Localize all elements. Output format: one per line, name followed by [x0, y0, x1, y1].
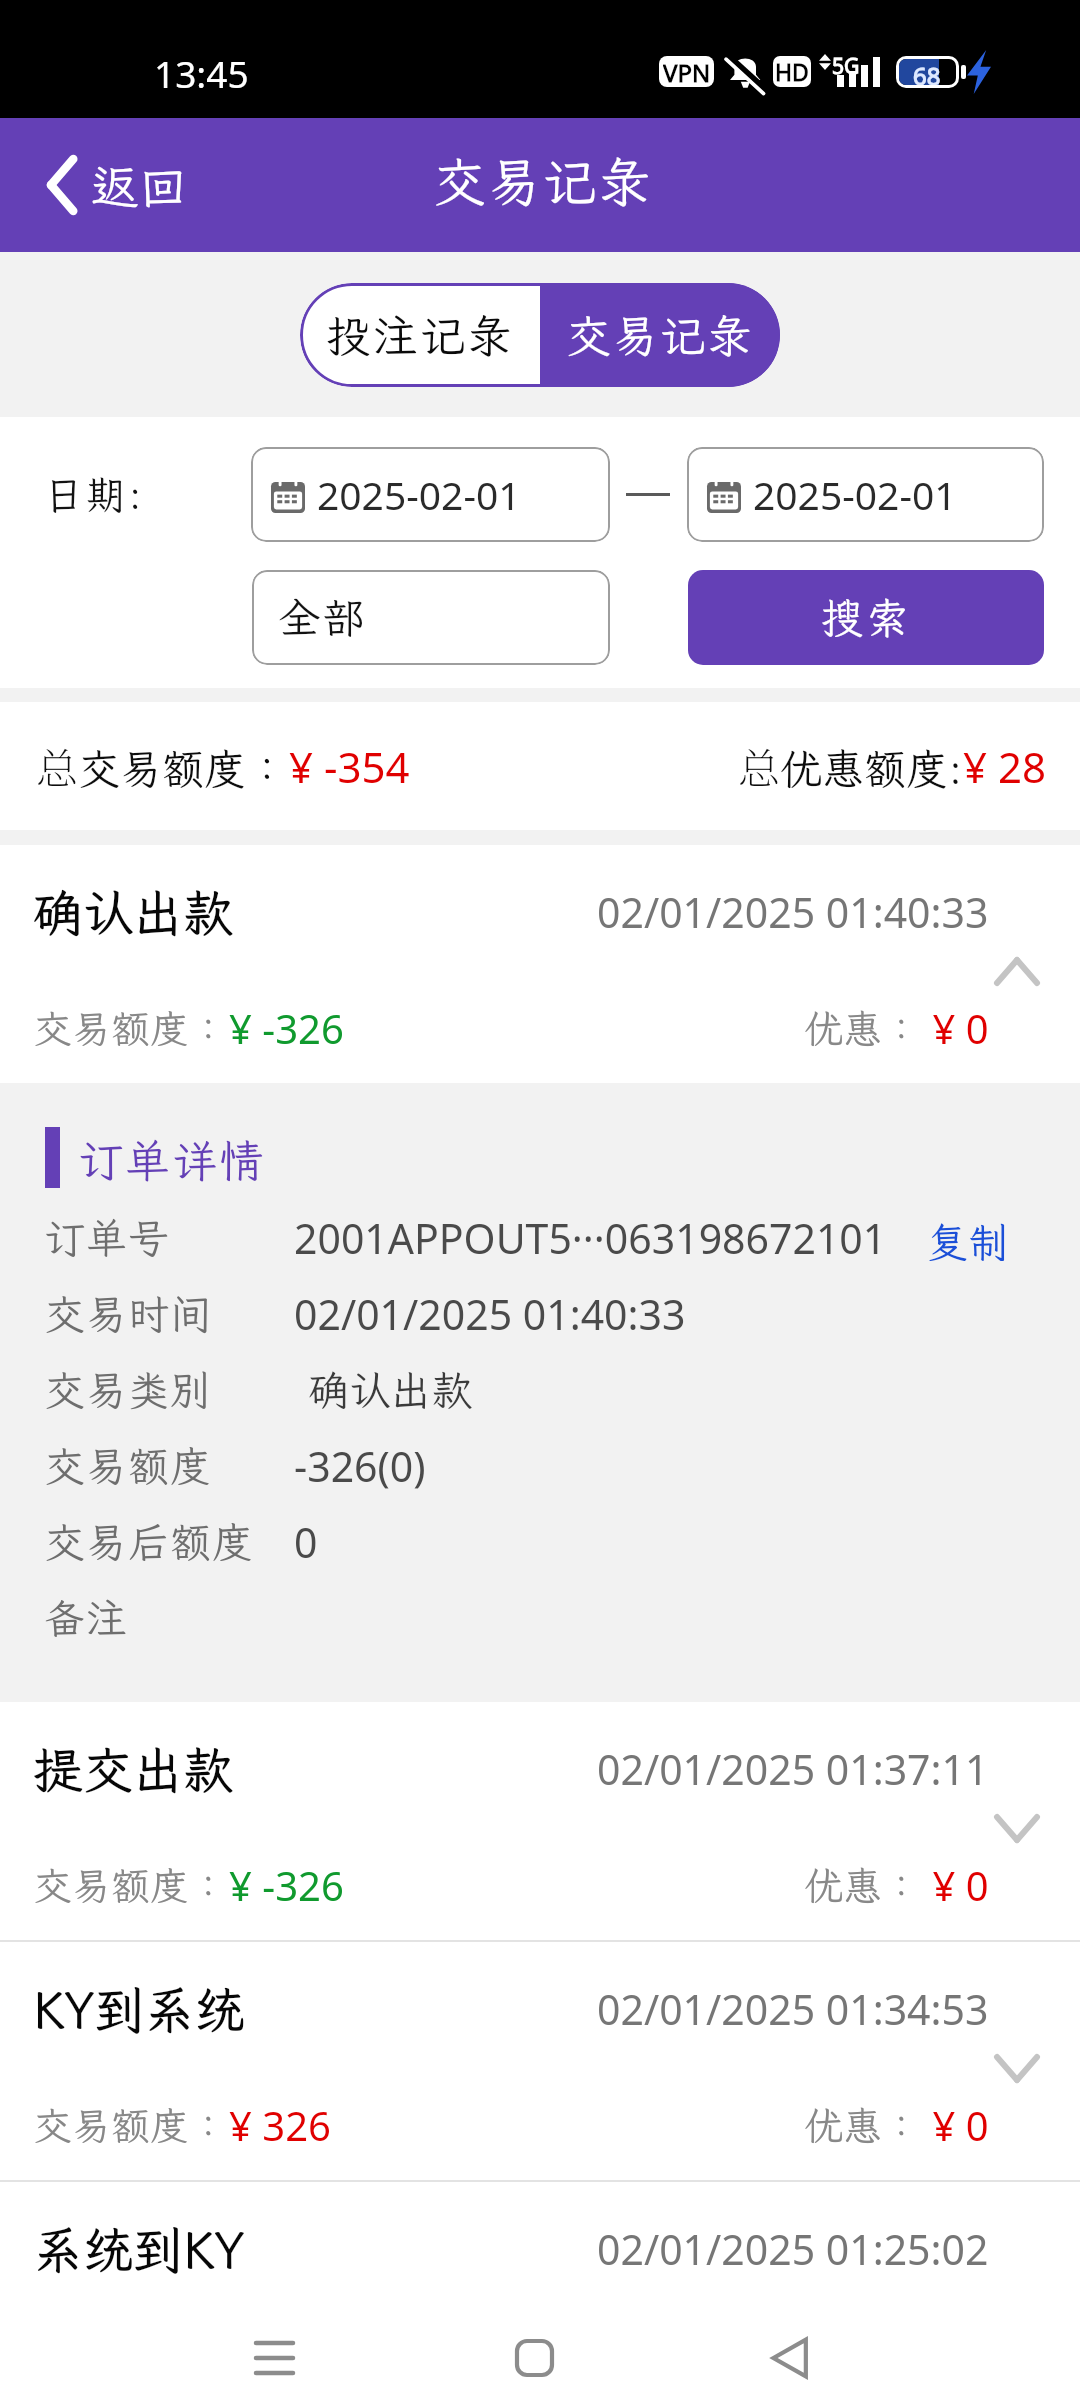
- staticText: 订单详情: [78, 1131, 267, 1190]
- button[interactable]: 搜索: [688, 570, 1044, 665]
- staticText: 备注: [44, 1591, 128, 1645]
- button[interactable]: 投注记录: [300, 283, 540, 387]
- staticText: 交易额度：: [33, 1003, 229, 1054]
- staticText: 全部: [278, 590, 369, 645]
- staticText: 2001APPOUT5···063198672101: [294, 1210, 887, 1266]
- button[interactable]: 返回: [0, 118, 214, 252]
- button[interactable]: Recent apps: [184, 2309, 364, 2400]
- staticText: 02/01/2025 01:34:53: [597, 1981, 989, 2037]
- staticText: 交易后额度: [44, 1515, 254, 1569]
- staticText: 日期:: [44, 468, 144, 521]
- staticText: 2025-02-01: [753, 468, 957, 521]
- staticText: 13:45: [154, 48, 249, 98]
- staticText: 提交出款: [33, 1736, 233, 1802]
- staticText: 交易记录: [566, 306, 755, 365]
- staticText: KY到系统: [33, 1976, 245, 2042]
- button[interactable]: KY到系统: [0, 1942, 1080, 2180]
- staticText: 确认出款: [33, 879, 233, 945]
- staticText: 优惠：: [804, 1860, 922, 1911]
- button[interactable]: 提交出款: [0, 1702, 1080, 1940]
- staticText: 交易额度: [44, 1439, 212, 1493]
- staticText: 02/01/2025 01:40:33: [597, 884, 989, 940]
- staticText: 系统到KY: [33, 2216, 245, 2282]
- staticText: ¥ -326: [229, 1001, 344, 1055]
- staticText: 2025-02-01: [317, 468, 521, 521]
- staticText: 交易时间: [44, 1287, 212, 1341]
- staticText: -326(0): [294, 1438, 426, 1494]
- staticText: 5G: [832, 52, 860, 81]
- button[interactable]: 2025-02-01: [251, 447, 610, 542]
- staticText: 订单号: [44, 1211, 170, 1265]
- staticText: 确认出款: [294, 1363, 473, 1417]
- staticText: 搜索: [821, 590, 912, 645]
- button[interactable]: 复制: [919, 1207, 1017, 1269]
- staticText: 总优惠额度:: [738, 736, 963, 796]
- staticText: ¥ -326: [229, 1858, 344, 1912]
- staticText: HD: [775, 56, 809, 87]
- staticText: 交易类别: [44, 1363, 212, 1417]
- staticText: 返回: [91, 154, 188, 217]
- staticText: 交易记录: [433, 146, 653, 216]
- staticText: 交易额度：: [33, 2100, 229, 2151]
- staticText: 02/01/2025 01:40:33: [294, 1286, 686, 1342]
- staticText: ¥ -354: [289, 738, 410, 795]
- staticText: 复制: [927, 1215, 1009, 1261]
- staticText: 交易额度：: [33, 1860, 229, 1911]
- staticText: 0: [294, 1514, 318, 1570]
- staticText: ¥ 0: [922, 2098, 989, 2152]
- staticText: ¥ 0: [922, 1001, 989, 1055]
- staticText: ¥ 28: [963, 738, 1046, 795]
- staticText: 总交易额度：: [36, 736, 289, 796]
- button[interactable]: 2025-02-01: [687, 447, 1044, 542]
- button[interactable]: Back: [700, 2309, 880, 2400]
- staticText: 68: [913, 59, 941, 85]
- button[interactable]: Home: [444, 2309, 624, 2400]
- staticText: 优惠：: [804, 1003, 922, 1054]
- staticText: 02/01/2025 01:25:02: [597, 2221, 989, 2277]
- staticText: 优惠：: [804, 2100, 922, 2151]
- staticText: ¥ 326: [229, 2098, 331, 2152]
- staticText: 02/01/2025 01:37:11: [597, 1741, 989, 1797]
- staticText: ¥ 0: [922, 1858, 989, 1912]
- button[interactable]: 交易记录: [540, 283, 780, 387]
- staticText: 投注记录: [326, 306, 515, 365]
- button[interactable]: 全部: [252, 570, 610, 665]
- button[interactable]: 确认出款: [0, 845, 1080, 1083]
- staticText: VPN: [663, 56, 711, 87]
- button[interactable]: 系统到KY: [0, 2182, 1080, 2302]
